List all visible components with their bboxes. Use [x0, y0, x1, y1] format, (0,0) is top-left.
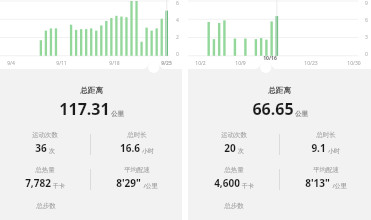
staticText: /公里	[332, 182, 347, 190]
staticText: 10/30	[347, 60, 361, 67]
staticText: 总步数	[224, 202, 244, 210]
button[interactable]: 平均配速	[280, 166, 371, 190]
staticText: 总距离	[268, 86, 291, 95]
staticText: 总步数	[36, 202, 56, 210]
staticText: 10/16	[263, 55, 277, 62]
staticText: 0	[176, 51, 179, 58]
staticText: 117.31	[59, 98, 110, 120]
staticText: /公里	[143, 182, 158, 190]
staticText: 次	[238, 147, 244, 155]
staticText: 9/18	[109, 60, 120, 67]
staticText: 运动次数	[32, 131, 58, 139]
staticText: 千卡	[242, 182, 254, 190]
button[interactable]: 总热量	[188, 166, 279, 190]
staticText: 10/2	[195, 60, 206, 67]
staticText: 7,782	[25, 176, 51, 190]
staticText: 千卡	[53, 182, 65, 190]
staticText: 次	[49, 147, 55, 155]
button[interactable]: 总时长	[91, 131, 182, 155]
staticText: 6	[365, 17, 368, 24]
staticText: 总时长	[127, 131, 147, 139]
staticText: 总热量	[35, 166, 55, 174]
button[interactable]: 总时长	[280, 131, 371, 155]
staticText: 66.65	[252, 98, 294, 120]
staticText: 2	[176, 34, 179, 41]
staticText: 16.6	[120, 141, 140, 155]
staticText: 4	[176, 17, 179, 24]
button[interactable]: 总热量	[0, 166, 90, 190]
staticText: 6	[176, 0, 179, 7]
staticText: 平均配速	[313, 166, 339, 174]
staticText: 10/23	[304, 60, 318, 67]
staticText: 总时长	[316, 131, 336, 139]
staticText: 小时	[328, 147, 340, 155]
staticText: 3	[365, 34, 368, 41]
button[interactable]: 运动次数	[0, 131, 90, 155]
staticText: 小时	[142, 147, 154, 155]
staticText: 运动次数	[221, 131, 247, 139]
staticText: 20	[224, 141, 236, 155]
staticText: 8'29"	[116, 176, 141, 190]
button[interactable]: 运动次数	[188, 131, 279, 155]
staticText: 公里	[111, 110, 124, 118]
staticText: 公里	[295, 110, 308, 118]
staticText: 9.1	[311, 141, 326, 155]
staticText: 总距离	[80, 86, 103, 95]
staticText: 总热量	[224, 166, 244, 174]
staticText: 9/25	[161, 60, 172, 67]
staticText: 9	[365, 0, 368, 7]
staticText: 4,600	[214, 176, 240, 190]
button[interactable]: 平均配速	[91, 166, 182, 190]
staticText: 9/11	[56, 60, 67, 67]
staticText: 平均配速	[124, 166, 150, 174]
staticText: 36	[35, 141, 47, 155]
staticText: 8'13"	[305, 176, 330, 190]
staticText: 10/9	[235, 60, 246, 67]
staticText: 0	[365, 51, 368, 58]
staticText: 9/4	[7, 60, 15, 67]
